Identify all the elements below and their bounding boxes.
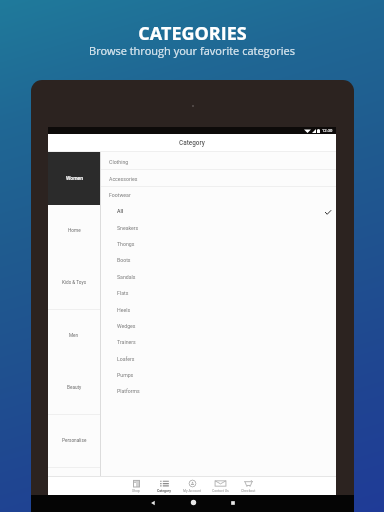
button[interactable]: Men <box>48 310 100 363</box>
staticText: Accessories <box>109 176 138 182</box>
staticText: Beauty <box>67 385 82 391</box>
staticText: Trainers <box>117 339 136 345</box>
staticText: Browse through your favorite categories <box>89 43 295 58</box>
staticText: Contact Us <box>212 489 229 493</box>
staticText: Category <box>157 489 171 493</box>
staticText: Pumps <box>117 372 134 378</box>
staticText: All <box>117 208 124 214</box>
staticText: Platforms <box>117 388 140 394</box>
button[interactable]: Category <box>150 480 178 493</box>
staticText: Sneakers <box>117 225 139 231</box>
staticText: My Account <box>183 489 201 493</box>
button[interactable]: Flats <box>101 285 336 301</box>
button[interactable]: Wedges <box>101 318 336 334</box>
staticText: Category <box>179 139 205 147</box>
button[interactable]: Beauty <box>48 362 100 415</box>
staticText: Wedges <box>117 323 136 329</box>
staticText: Clothing <box>109 159 129 165</box>
staticText: Sandals <box>117 274 136 280</box>
button[interactable]: Trainers <box>101 334 336 350</box>
staticText: CATEGORIES <box>138 21 247 46</box>
button[interactable]: Thongs <box>101 236 336 252</box>
button[interactable]: Shop <box>122 480 150 493</box>
button[interactable]: Heels <box>101 302 336 318</box>
staticText: Thongs <box>117 241 135 247</box>
staticText: Flats <box>117 290 129 296</box>
staticText: Checkout <box>241 489 256 493</box>
button[interactable]: Kids & Toys <box>48 257 100 310</box>
other: Back <box>149 499 157 507</box>
button[interactable]: Personalise <box>48 415 100 468</box>
button[interactable]: All <box>101 203 336 219</box>
staticText: Personalise <box>62 438 87 444</box>
other: Recents <box>229 499 237 507</box>
button[interactable]: Platforms <box>101 383 336 399</box>
staticText: Home <box>68 228 81 234</box>
button[interactable]: Women <box>48 152 100 205</box>
staticText: Loafers <box>117 356 135 362</box>
button[interactable]: Contact Us <box>206 480 234 493</box>
button[interactable]: Footwear <box>101 187 336 203</box>
button[interactable]: My Account <box>178 480 206 493</box>
button[interactable]: Loafers <box>101 351 336 367</box>
button[interactable]: Boots <box>101 252 336 268</box>
other: Home <box>189 498 198 507</box>
button[interactable]: Accessories <box>101 171 336 187</box>
staticText: Boots <box>117 257 131 263</box>
staticText: Footwear <box>109 192 131 198</box>
staticText: Women <box>66 175 83 181</box>
button[interactable]: Clothing <box>101 154 336 170</box>
button[interactable]: Sandals <box>101 269 336 285</box>
staticText: 12:30 <box>322 128 333 133</box>
button[interactable]: Home <box>48 205 100 258</box>
staticText: Kids & Toys <box>62 280 87 286</box>
button[interactable]: Sneakers <box>101 220 336 236</box>
button[interactable]: Checkout <box>234 480 262 493</box>
staticText: Shop <box>132 489 140 493</box>
staticText: Heels <box>117 307 131 313</box>
button[interactable]: Pumps <box>101 367 336 383</box>
staticText: Men <box>69 333 79 339</box>
